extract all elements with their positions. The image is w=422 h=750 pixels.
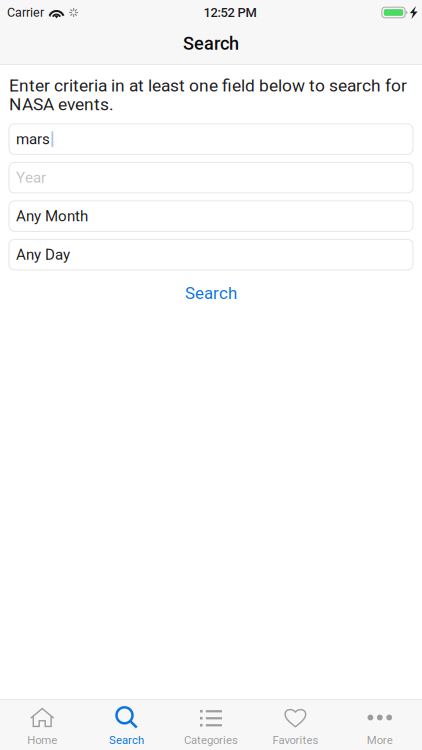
staticText: Search bbox=[183, 33, 239, 54]
staticText: Enter criteria in at least one field bel… bbox=[9, 75, 407, 114]
button[interactable]: Categories bbox=[169, 698, 253, 750]
staticText: Favorites bbox=[272, 733, 318, 747]
staticText: Search bbox=[109, 733, 144, 747]
staticText: Year bbox=[16, 169, 46, 186]
staticText: mars bbox=[16, 130, 50, 148]
button[interactable]: More bbox=[338, 698, 422, 750]
staticText: Categories bbox=[184, 733, 238, 747]
staticText: Any Day bbox=[16, 246, 70, 263]
staticText: More bbox=[367, 733, 393, 747]
staticText: Carrier bbox=[7, 5, 44, 20]
staticText: Search bbox=[185, 283, 237, 303]
staticText: Home bbox=[27, 733, 57, 747]
button[interactable]: Search bbox=[84, 698, 169, 750]
staticText: 12:52 PM bbox=[204, 5, 257, 20]
button[interactable]: Favorites bbox=[253, 698, 338, 750]
button[interactable]: Home bbox=[0, 698, 84, 750]
button[interactable]: Search bbox=[9, 276, 413, 310]
staticText: Any Month bbox=[16, 207, 88, 225]
